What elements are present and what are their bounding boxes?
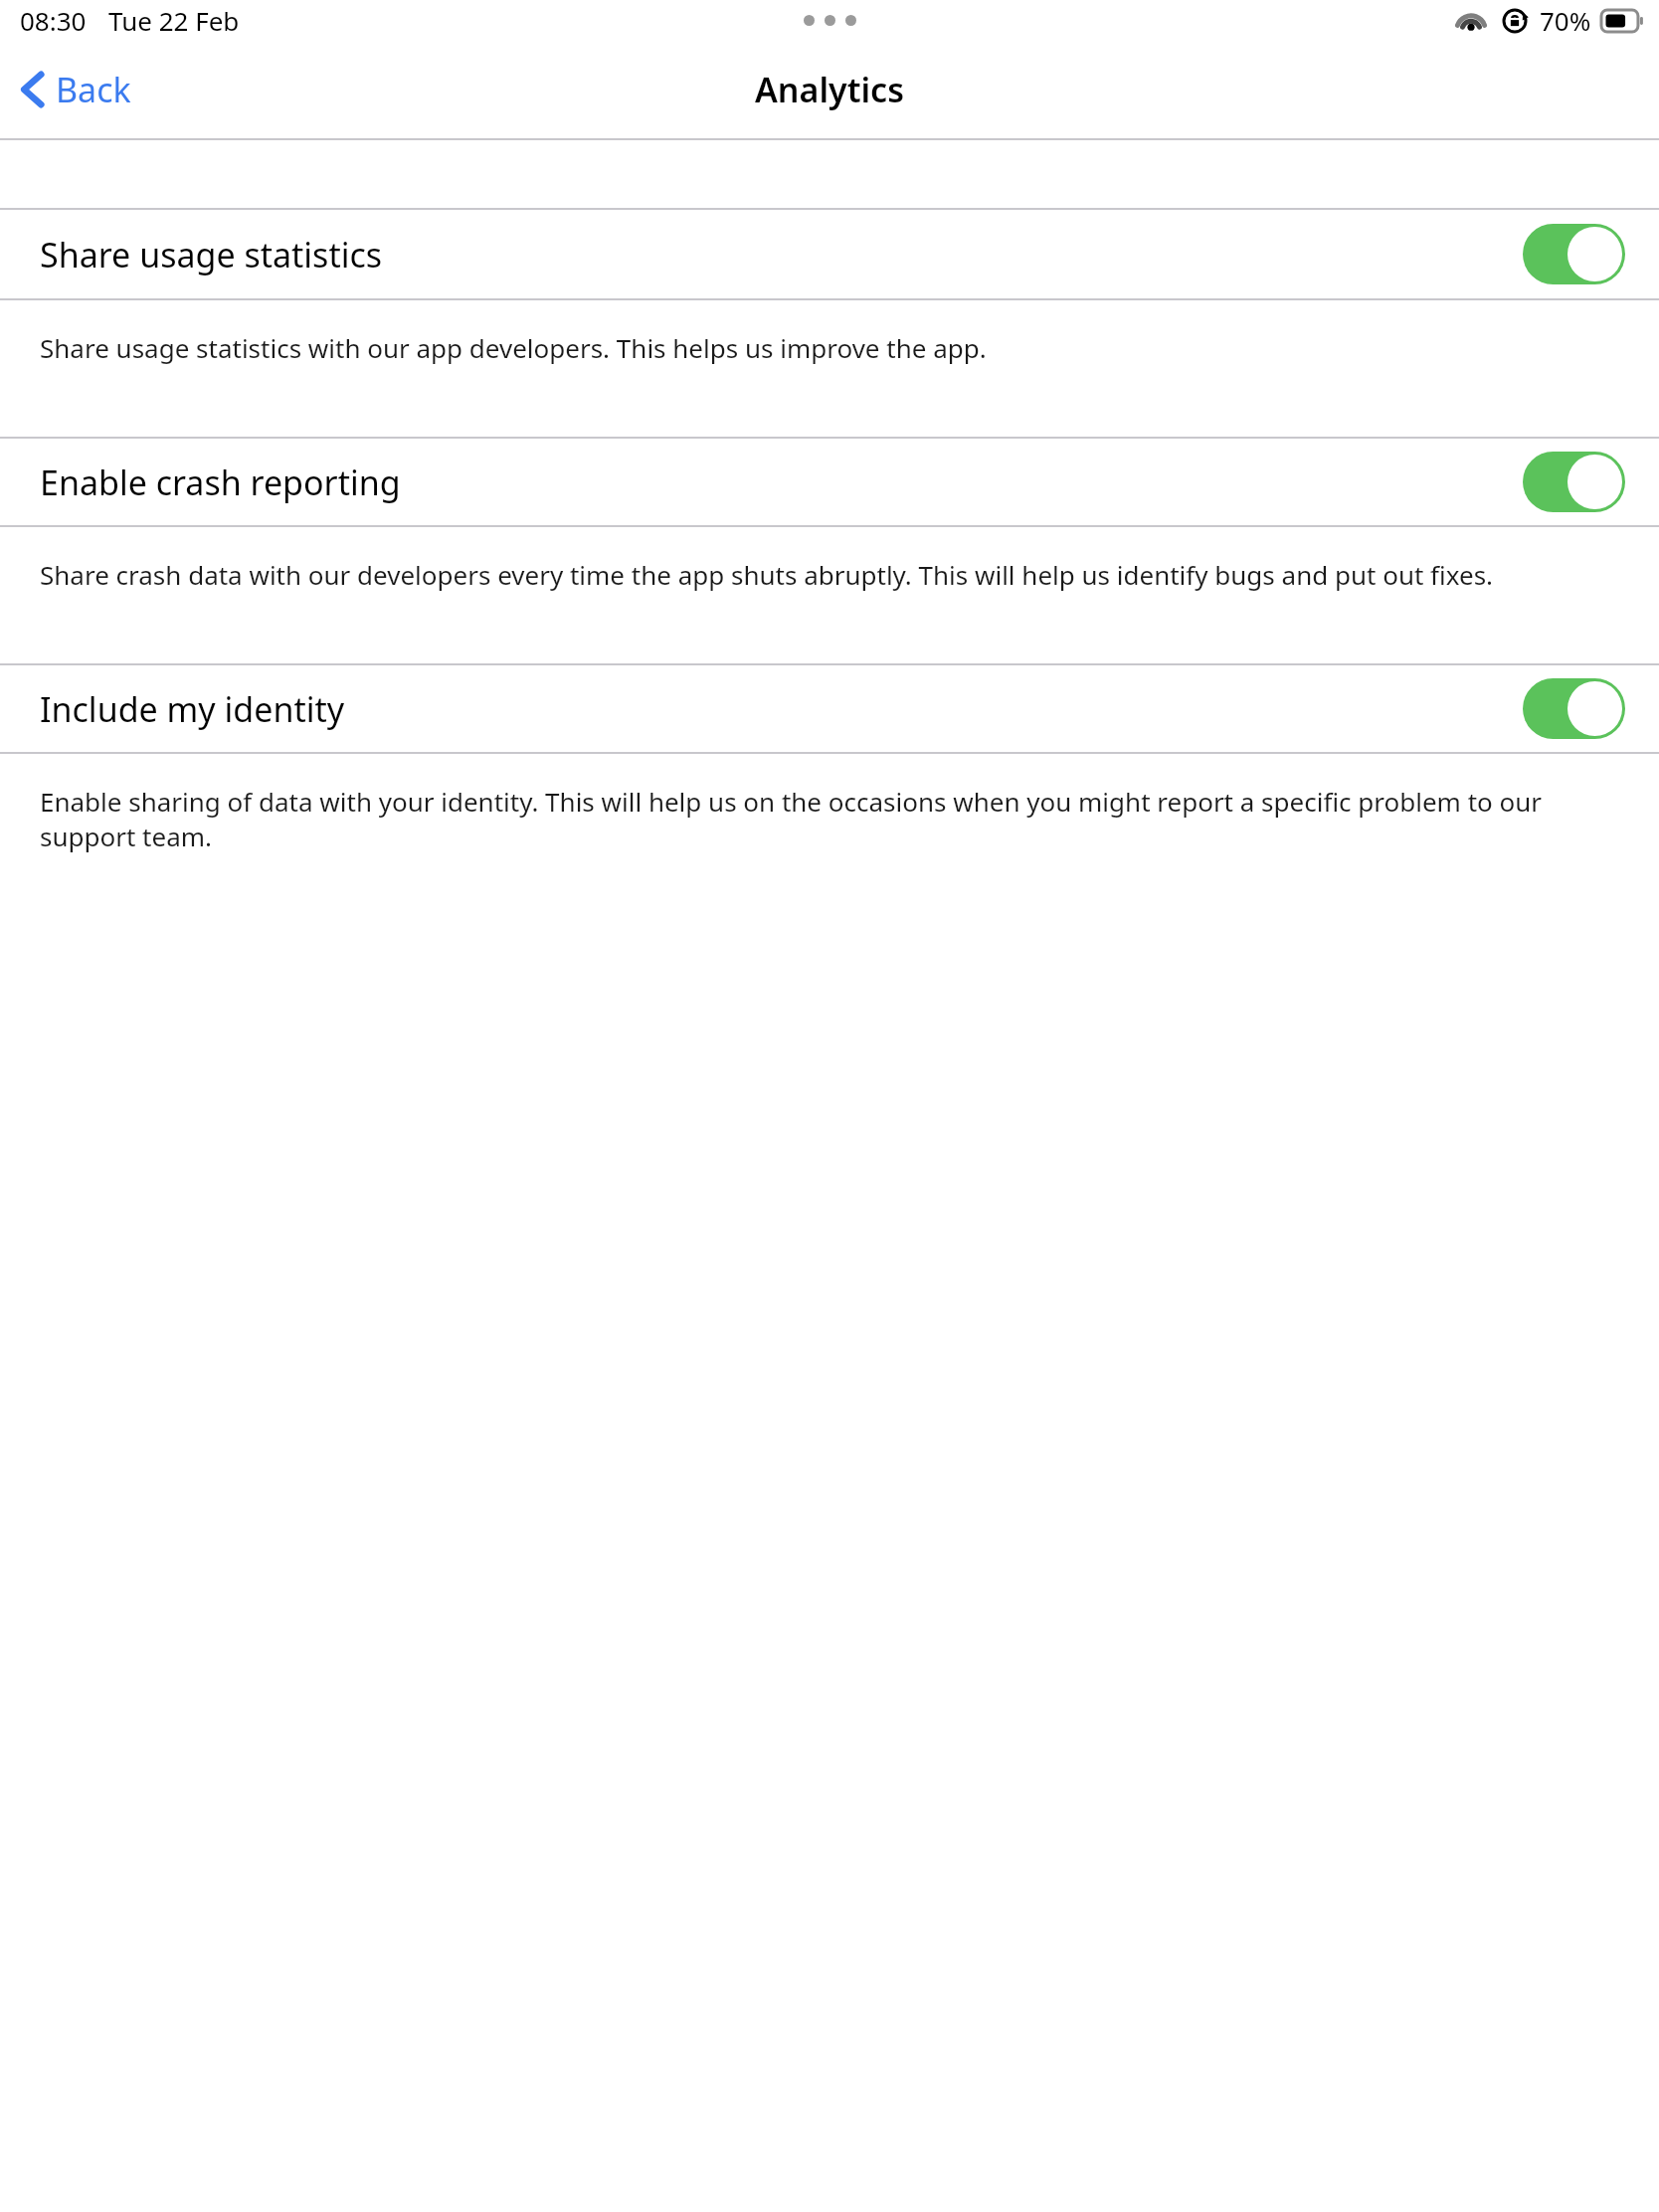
staticText: Include my identity — [40, 686, 1523, 732]
button[interactable]: Include my identity — [0, 665, 1659, 752]
button[interactable]: Enable crash reporting — [0, 439, 1659, 525]
staticText: 08:30 — [20, 3, 87, 38]
staticText: Tue 22 Feb — [108, 3, 240, 38]
staticText: Back — [56, 67, 131, 112]
button[interactable]: Toggle on — [1523, 678, 1625, 739]
staticText: Analytics — [755, 67, 904, 112]
staticText: Share crash data with our developers eve… — [40, 557, 1619, 592]
staticText: Enable crash reporting — [40, 460, 1523, 505]
staticText: Enable sharing of data with your identit… — [40, 784, 1619, 853]
staticText: Share usage statistics with our app deve… — [40, 330, 1619, 365]
staticText: Share usage statistics — [40, 232, 1523, 277]
button[interactable]: Toggle on — [1523, 452, 1625, 512]
button[interactable]: Toggle on — [1523, 224, 1625, 284]
button[interactable]: Share usage statistics — [0, 210, 1659, 298]
staticText: 70% — [1540, 3, 1591, 38]
button[interactable]: Back — [0, 57, 151, 122]
